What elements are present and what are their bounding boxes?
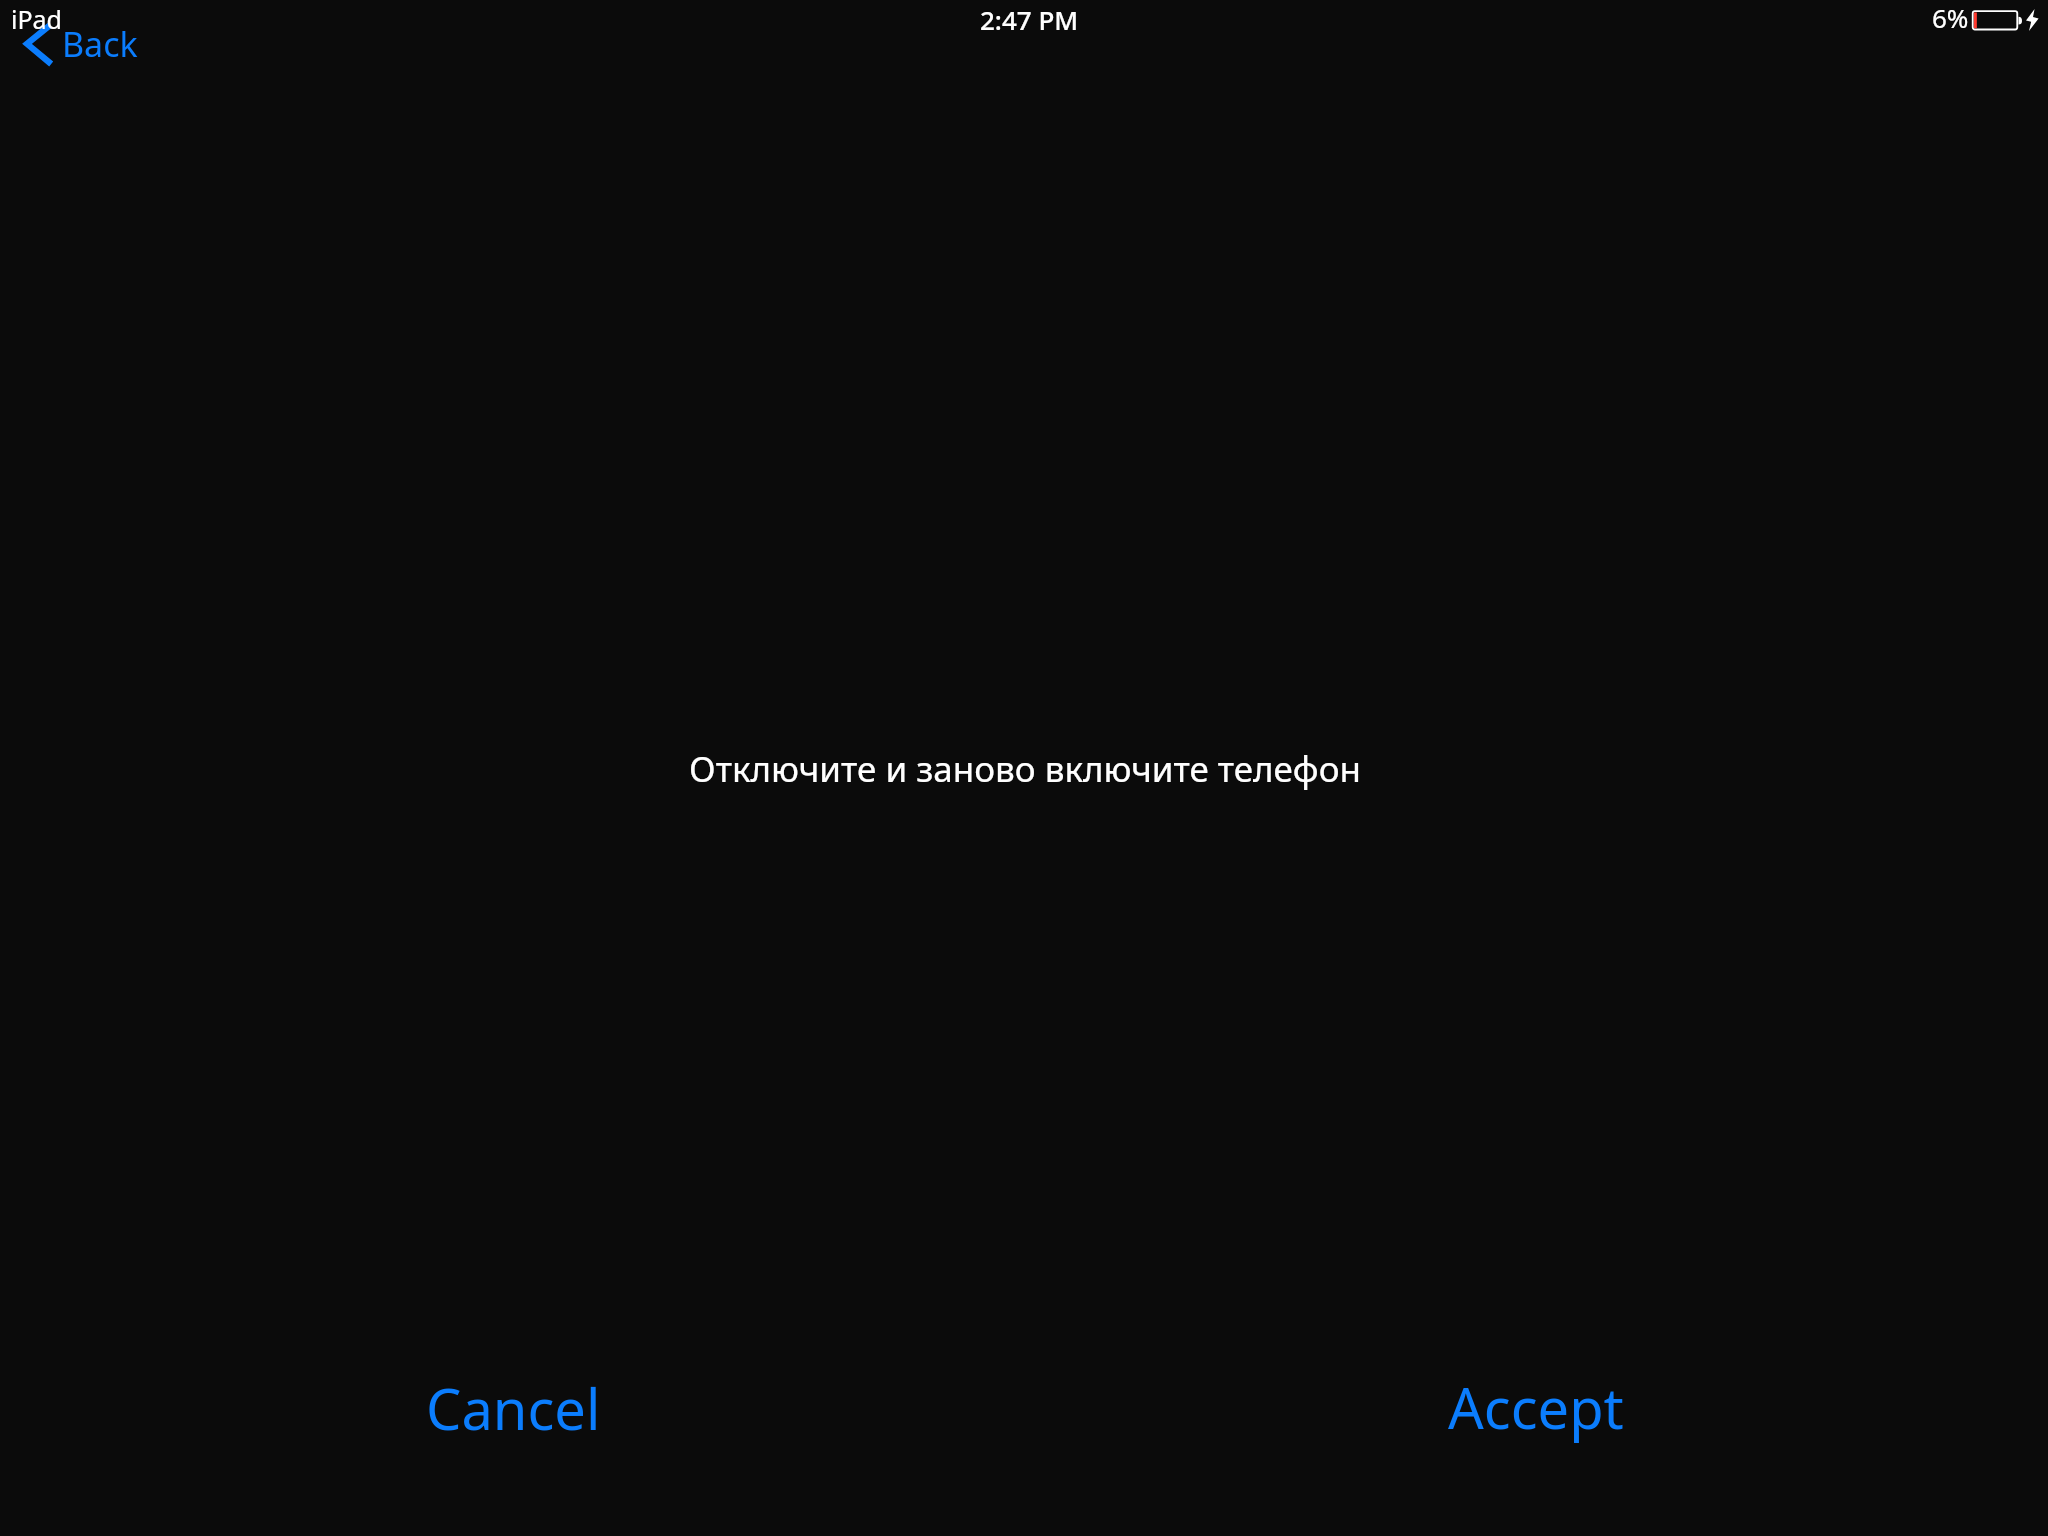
button[interactable]: Back xyxy=(8,14,158,70)
staticText: iPad xyxy=(11,2,62,36)
button[interactable]: Cancel xyxy=(396,1360,628,1466)
staticText: Back xyxy=(62,21,138,67)
staticText: Отключите и заново включите телефон xyxy=(689,745,1361,793)
other: Battery 6 percent xyxy=(1971,10,2023,32)
other: Charging xyxy=(2026,9,2040,33)
staticText: 2:47 PM xyxy=(980,2,1079,37)
staticText: Accept xyxy=(1448,1369,1624,1445)
staticText: Cancel xyxy=(426,1370,601,1446)
staticText: 6% xyxy=(1932,0,1969,35)
button[interactable]: Accept xyxy=(1416,1360,1654,1466)
